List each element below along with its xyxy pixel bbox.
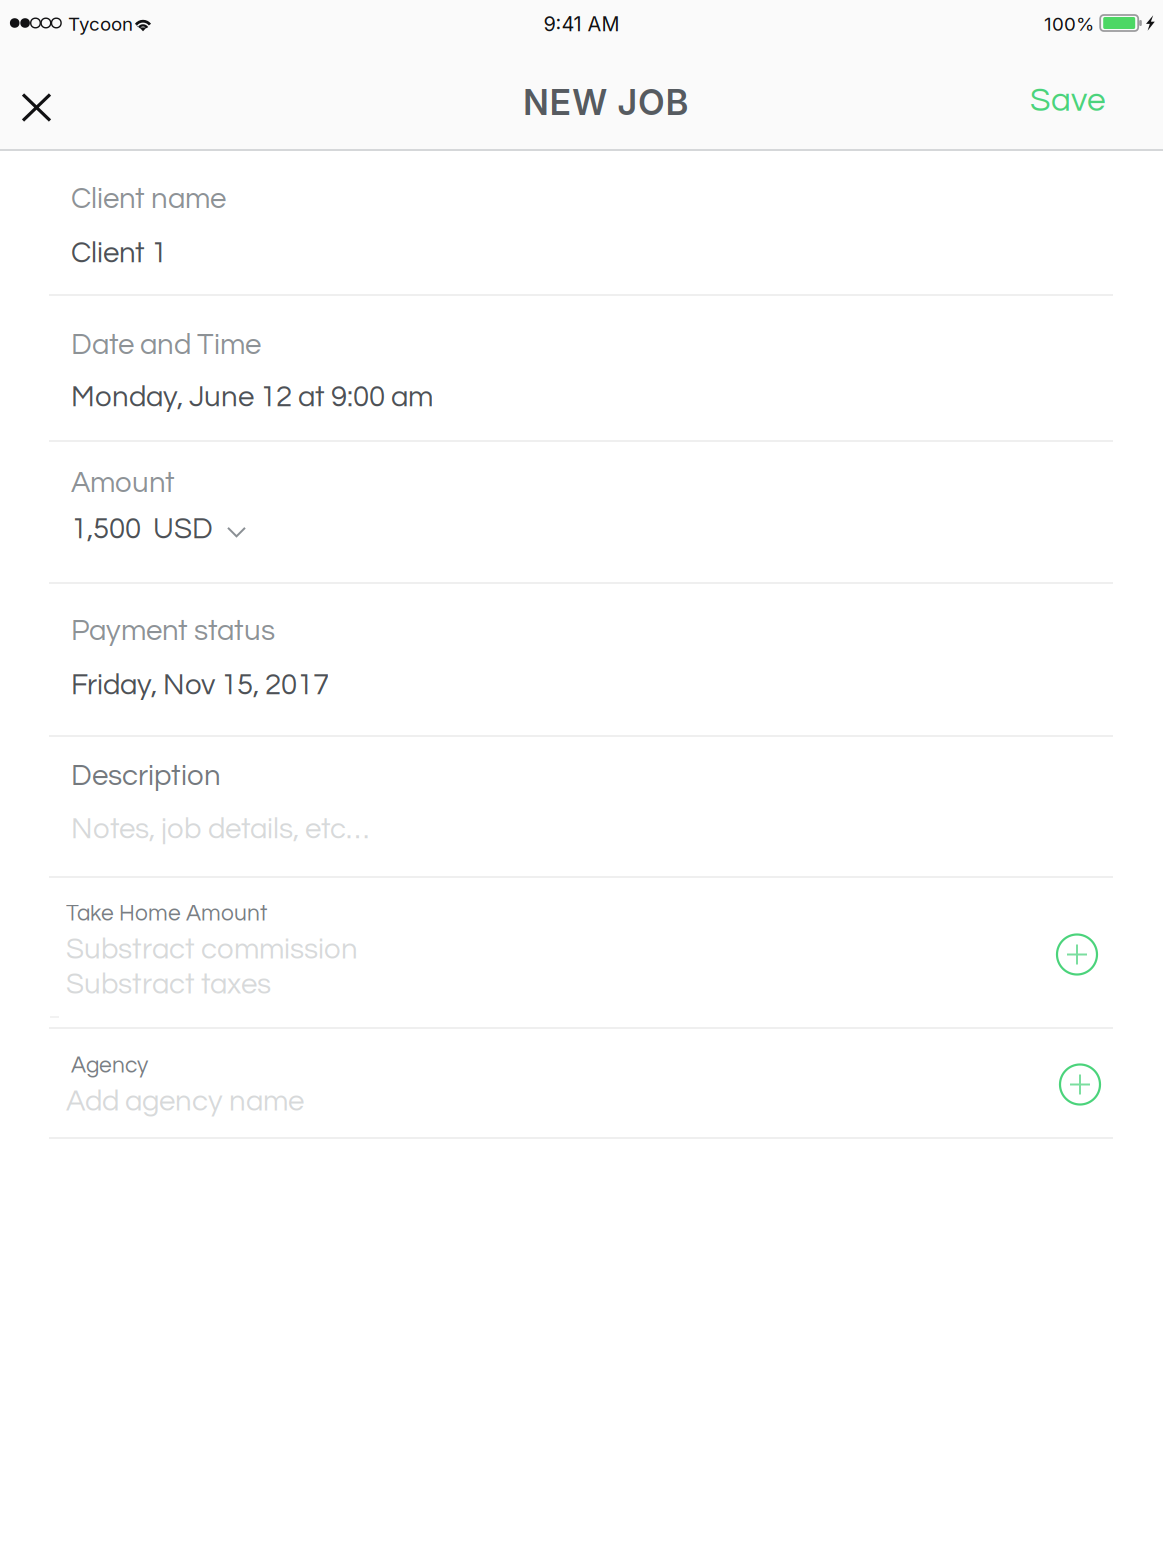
staticText: NEW JOB <box>523 81 688 123</box>
staticText: Agency <box>71 1054 148 1077</box>
staticText: Substract taxes <box>66 970 271 1000</box>
button[interactable]: Payment status <box>0 584 1163 735</box>
staticText: 9:41 AM <box>543 12 619 36</box>
button[interactable]: Date and Time <box>0 296 1163 440</box>
staticText: Amount <box>71 468 175 498</box>
button[interactable]: Take Home Amount <box>0 878 1163 1027</box>
button[interactable]: Amount <box>0 442 1163 582</box>
staticText: Add agency name <box>66 1086 304 1116</box>
staticText: Client 1 <box>71 238 167 268</box>
staticText: Description <box>71 761 221 791</box>
button[interactable]: Save <box>996 46 1106 149</box>
button[interactable]: Add <box>1045 1049 1115 1119</box>
button[interactable]: Add <box>1042 919 1112 989</box>
staticText: Friday, Nov 15, 2017 <box>71 670 329 700</box>
button[interactable]: Agency <box>0 1029 1163 1137</box>
button[interactable]: Description <box>0 737 1163 876</box>
staticText: Substract commission <box>66 934 358 964</box>
staticText: 100% <box>1044 13 1094 35</box>
button[interactable]: Client name <box>0 151 1163 294</box>
staticText: 1,500 USD <box>71 514 213 544</box>
staticText: Payment status <box>71 616 275 646</box>
staticText: Date and Time <box>71 330 261 360</box>
staticText: Tycoon <box>68 13 133 35</box>
staticText: Notes, job details, etc… <box>71 814 369 844</box>
staticText: Client name <box>71 184 226 214</box>
staticText: Save <box>1030 83 1106 118</box>
staticText: Monday, June 12 at 9:00 am <box>71 382 433 412</box>
button[interactable]: Close <box>23 46 103 149</box>
staticText: Take Home Amount <box>66 902 267 925</box>
